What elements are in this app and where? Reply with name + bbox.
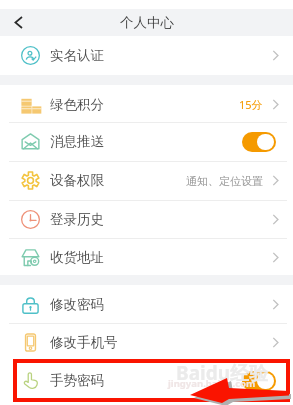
button[interactable]: 登录历史 <box>0 200 293 238</box>
staticText: 收货地址 <box>50 249 104 266</box>
button[interactable]: 消息推送 <box>0 122 293 161</box>
staticText: 消息推送 <box>50 133 104 150</box>
button[interactable]: Toggle <box>242 371 276 391</box>
button[interactable]: 设备权限 <box>0 161 293 200</box>
staticText: 登录历史 <box>50 211 104 228</box>
button[interactable]: 手势密码 <box>0 361 293 400</box>
staticText: 修改手机号 <box>50 334 118 351</box>
button[interactable]: 修改手机号 <box>0 323 293 361</box>
staticText: 设备权限 <box>50 172 104 189</box>
button[interactable]: Toggle <box>242 132 276 152</box>
button[interactable]: 收货地址 <box>0 238 293 276</box>
staticText: 修改密码 <box>50 296 104 313</box>
staticText: 通知、定位设置 <box>186 174 263 188</box>
button[interactable]: 修改密码 <box>0 285 293 323</box>
staticText: Baidu经验 <box>176 360 269 386</box>
button[interactable]: Back <box>0 9 36 36</box>
staticText: 手势密码 <box>50 372 104 389</box>
staticText: 个人中心 <box>120 14 174 31</box>
staticText: 实名认证 <box>50 47 104 64</box>
staticText: 15分 <box>239 97 263 112</box>
button[interactable]: 绿色积分 <box>0 85 293 123</box>
staticText: jingyan.baidu.com <box>168 377 256 390</box>
button[interactable]: 实名认证 <box>0 36 293 75</box>
staticText: 绿色积分 <box>50 96 104 113</box>
